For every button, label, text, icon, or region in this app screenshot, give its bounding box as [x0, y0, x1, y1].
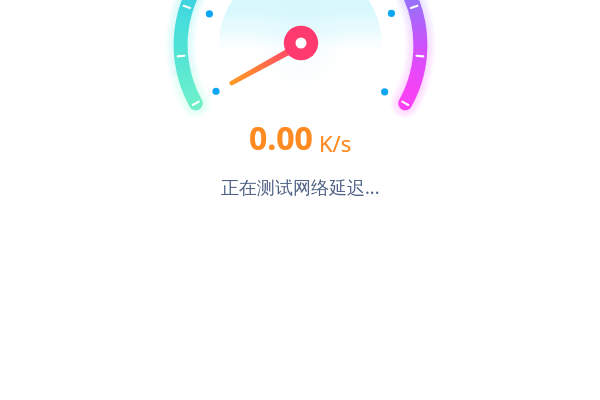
button[interactable]: Speed test gauge [0, 0, 600, 215]
staticText: 正在测试网络延迟... [221, 175, 380, 200]
staticText: K/s [319, 128, 352, 158]
staticText: 0.00 [249, 116, 313, 160]
